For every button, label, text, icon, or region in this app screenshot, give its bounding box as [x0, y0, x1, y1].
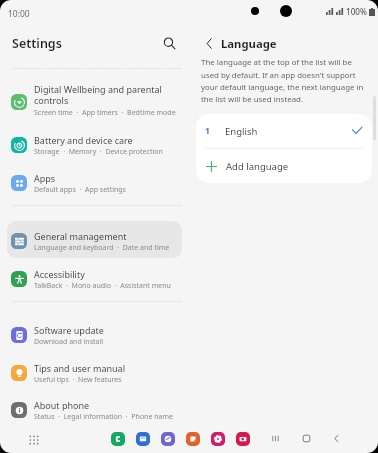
staticText: TalkBack · Mono audio · Assistant menu	[34, 281, 171, 291]
staticText: The language at the top of the list will…	[201, 57, 368, 104]
staticText: General management	[34, 230, 127, 242]
staticText: Download and install	[34, 337, 104, 347]
button[interactable]: Accessibility	[0, 260, 189, 298]
staticText: English	[225, 125, 258, 138]
button[interactable]: Tips and user manual	[0, 354, 189, 392]
button[interactable]: Digital Wellbeing and parental controls	[0, 76, 189, 124]
button[interactable]: All apps	[25, 431, 42, 448]
staticText: Default apps · App settings	[34, 185, 126, 195]
staticText: 100%	[346, 6, 368, 17]
staticText: 1	[205, 125, 210, 137]
button[interactable]: Software update	[0, 316, 189, 354]
button[interactable]: cam	[236, 432, 250, 446]
button[interactable]: Back	[328, 430, 345, 447]
button[interactable]: files	[186, 432, 200, 446]
button[interactable]: General management	[0, 222, 189, 260]
button[interactable]: msg	[136, 432, 150, 446]
staticText: Settings	[12, 35, 62, 52]
button[interactable]: About phone	[0, 391, 189, 429]
button[interactable]: Back	[197, 31, 221, 55]
button[interactable]: store	[211, 432, 225, 446]
button[interactable]: Battery and device care	[0, 126, 189, 164]
button[interactable]: net	[161, 432, 175, 446]
button[interactable]: Apps	[0, 164, 189, 202]
staticText: Accessibility	[34, 268, 85, 280]
staticText: Useful tips · New features	[34, 375, 122, 385]
button[interactable]: Recents	[267, 430, 284, 447]
button[interactable]: Home	[298, 430, 315, 447]
staticText: Tips and user manual	[34, 362, 125, 374]
staticText: Storage · Memory · Device protection	[34, 147, 163, 157]
staticText: About phone	[34, 399, 90, 411]
staticText: Screen time · App timers · Bedtime mode	[34, 108, 176, 118]
button[interactable]: phone	[111, 432, 125, 446]
staticText: Apps	[34, 172, 56, 184]
staticText: Digital Wellbeing and parental controls	[34, 83, 162, 107]
staticText: Battery and device care	[34, 134, 133, 146]
staticText: 10:00	[8, 8, 30, 20]
staticText: Status · Legal information · Phone name	[34, 412, 173, 422]
button[interactable]: Search	[157, 31, 181, 55]
staticText: Software update	[34, 324, 104, 336]
staticText: Language and keyboard · Date and time	[34, 243, 170, 253]
staticText: Add language	[226, 160, 289, 173]
button[interactable]: 1	[196, 114, 372, 148]
button[interactable]: Add language	[196, 149, 372, 183]
staticText: Language	[221, 36, 277, 51]
